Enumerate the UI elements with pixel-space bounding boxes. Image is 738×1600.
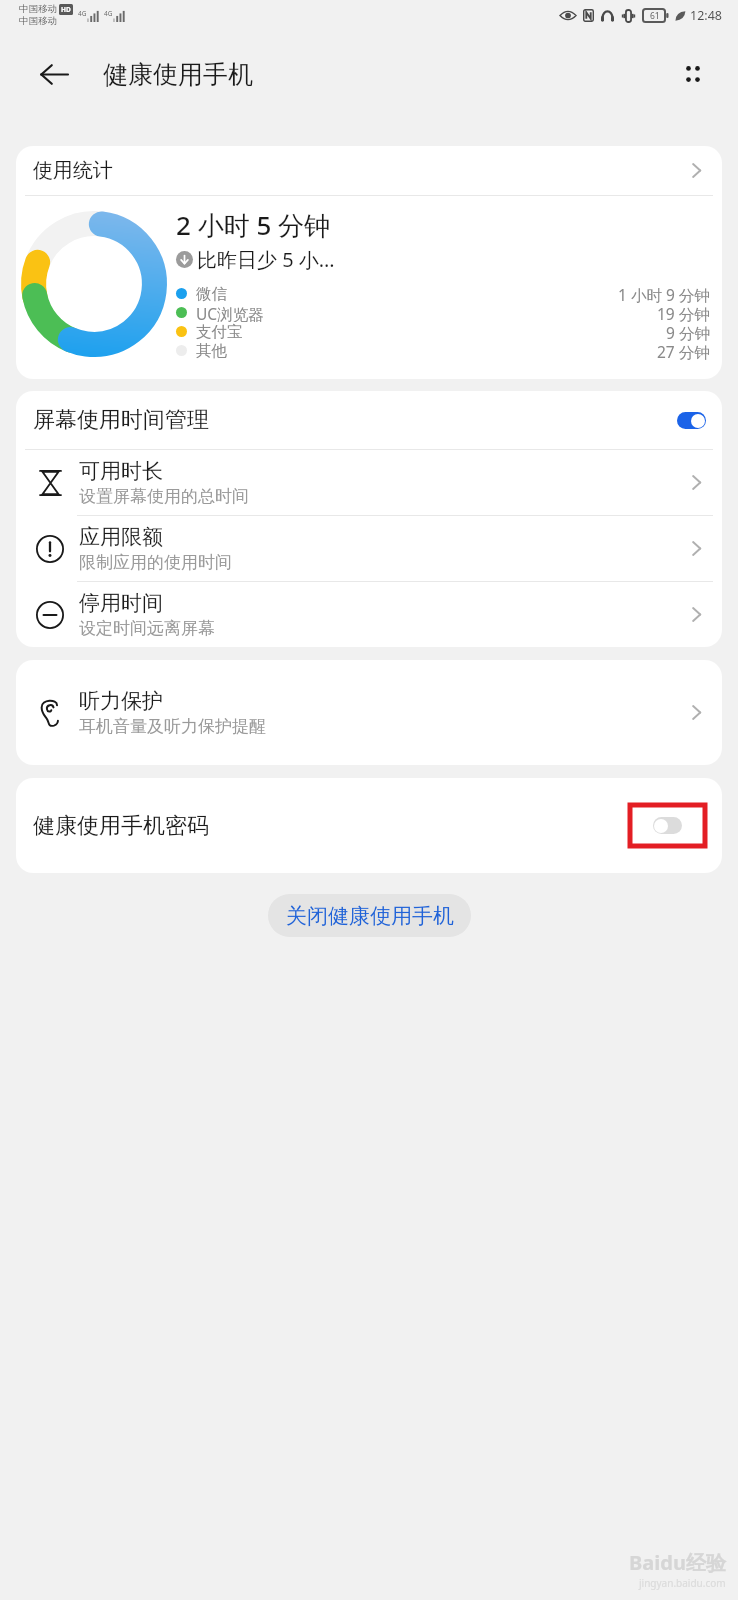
button[interactable]: 健康使用手机密码 <box>16 778 722 873</box>
staticText: 比昨日少 5 小… <box>197 246 335 273</box>
button[interactable]: 关闭健康使用手机 <box>268 894 471 937</box>
button[interactable]: Off <box>653 817 682 834</box>
staticText: UC浏览器 <box>196 303 264 322</box>
staticText: HD <box>61 5 71 14</box>
staticText: 可用时长 <box>79 458 163 484</box>
staticText: 1 小时 9 分钟 <box>618 284 710 303</box>
button[interactable]: 应用限额 <box>16 516 722 581</box>
staticText: 设定时间远离屏幕 <box>79 618 215 639</box>
button[interactable]: 屏幕使用时间管理 <box>16 391 722 449</box>
staticText: 使用统计 <box>33 158 688 183</box>
staticText: 限制应用的使用时间 <box>79 552 232 573</box>
staticText: 4G <box>78 9 87 18</box>
staticText: 中国移动 <box>19 15 57 27</box>
staticText: 微信 <box>196 284 227 303</box>
staticText: 19 分钟 <box>657 303 710 322</box>
staticText: 4G <box>104 9 113 18</box>
staticText: 27 分钟 <box>657 341 710 360</box>
staticText: 中国移动 <box>19 3 57 15</box>
staticText: jingyan.baidu.com <box>639 1576 726 1590</box>
staticText: 61 <box>650 10 660 22</box>
button[interactable]: Back <box>26 47 80 101</box>
staticText: 设置屏幕使用的总时间 <box>79 486 249 507</box>
staticText: 停用时间 <box>79 590 163 616</box>
staticText: 关闭健康使用手机 <box>286 903 454 929</box>
staticText: 支付宝 <box>196 322 243 341</box>
staticText: 12:48 <box>690 7 722 24</box>
staticText: 应用限额 <box>79 524 163 550</box>
staticText: 9 分钟 <box>666 322 710 341</box>
staticText: 健康使用手机 <box>103 59 253 90</box>
staticText: 屏幕使用时间管理 <box>33 406 677 434</box>
staticText: 耳机音量及听力保护提醒 <box>79 716 266 737</box>
staticText: 听力保护 <box>79 688 163 714</box>
button[interactable]: 可用时长 <box>16 450 722 515</box>
staticText: Baidu经验 <box>629 1549 726 1576</box>
button[interactable]: On <box>677 412 706 429</box>
button[interactable]: 使用统计 <box>16 146 722 195</box>
staticText: 健康使用手机密码 <box>33 812 630 840</box>
staticText: 2 小时 5 分钟 <box>176 207 331 243</box>
staticText: 其他 <box>196 341 227 360</box>
button[interactable]: 听力保护 <box>16 660 722 765</box>
button[interactable]: 停用时间 <box>16 582 722 647</box>
button[interactable]: More options <box>668 49 718 99</box>
